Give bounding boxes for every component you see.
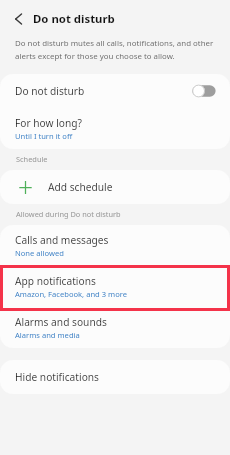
button[interactable]: Add schedule [0,170,230,204]
staticText: For how long? [15,116,82,130]
staticText: None allowed [15,248,64,258]
button[interactable]: App notifications [0,266,230,307]
staticText: Alarms and media [15,330,80,340]
staticText: Hide notifications [15,370,99,384]
staticText: Alarms and sounds [15,315,107,329]
staticText: Do not disturb [33,11,115,27]
button[interactable]: Navigate up [7,7,30,30]
staticText: Until I turn it off [15,131,73,141]
staticText: Calls and messages [15,233,109,247]
staticText: Do not disturb [15,84,85,98]
button[interactable]: Alarms and sounds [0,307,230,348]
button[interactable]: For how long? [0,108,230,149]
button[interactable]: Hide notifications [0,360,230,394]
button[interactable]: Do not disturb [0,74,230,108]
button[interactable]: Calls and messages [0,225,230,266]
staticText: Schedule [16,154,48,164]
staticText: Allowed during Do not disturb [16,209,121,219]
staticText: Add schedule [48,180,113,194]
staticText: Do not disturb mutes all calls, notifica… [15,38,226,62]
staticText: Amazon, Facebook, and 3 more [15,289,128,299]
staticText: App notifications [15,274,96,288]
